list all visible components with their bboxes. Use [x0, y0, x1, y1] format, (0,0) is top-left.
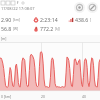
- button[interactable]: Action: [11, 1, 15, 5]
- staticText: 2.90: [1, 16, 12, 23]
- button[interactable]: Share: [21, 1, 25, 5]
- button[interactable]: 2.90: [1, 15, 33, 24]
- staticText: [kJ]: [55, 27, 60, 31]
- button[interactable]: 2:23:14: [33, 15, 68, 24]
- staticText: [m]: [1, 36, 7, 41]
- staticText: 0 [km]: [1, 94, 12, 99]
- staticText: 772.2: [40, 25, 54, 32]
- button[interactable]: Action: [6, 1, 10, 5]
- button[interactable]: Edit: [87, 2, 98, 13]
- button[interactable]: 438.6: [68, 15, 99, 24]
- staticText: f: [17, 1, 19, 5]
- staticText: 20: [41, 94, 45, 99]
- staticText: 56.8: [1, 25, 12, 32]
- button[interactable]: [m]: [0, 35, 100, 100]
- staticText: 2:23:14: [40, 16, 58, 23]
- button[interactable]: Share on Facebook: [16, 1, 20, 5]
- staticText: 17/08/22 17:08:07: [1, 6, 35, 11]
- button[interactable]: Action: [1, 1, 5, 5]
- button[interactable]: 772.2: [33, 24, 68, 33]
- staticText: [km]: [13, 18, 20, 22]
- staticText: 438.6: [75, 16, 89, 23]
- button[interactable]: Record: [74, 2, 85, 13]
- staticText: [W]: [13, 27, 19, 31]
- staticText: 40: [82, 94, 86, 99]
- button[interactable]: 56.8: [1, 24, 33, 33]
- staticText: [: [90, 18, 92, 22]
